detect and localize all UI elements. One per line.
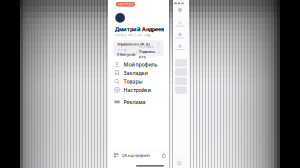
staticText: Подключить — [138, 49, 155, 59]
staticText: VK Combo — [138, 45, 153, 49]
staticText: 0 бонусов — [117, 51, 135, 57]
button[interactable]: Настройки — [108, 86, 169, 94]
staticText: Дмитрий Андреев — [115, 26, 164, 33]
staticText: QR-код профиля — [121, 153, 149, 158]
button[interactable]: Управление VK ID — [113, 40, 163, 48]
button[interactable]: Закладки — [108, 69, 169, 77]
button[interactable]: Товары — [108, 77, 169, 86]
staticText: Управление VK ID — [117, 41, 150, 47]
staticText: СМОТРЕТЬ — [117, 2, 133, 6]
staticText: был(а) в сети 5 мин назад — [115, 33, 151, 37]
button[interactable]: Реклама — [108, 98, 169, 106]
button[interactable]: VK Pay — [117, 48, 138, 57]
button[interactable]: QR-код профиля — [108, 150, 169, 160]
staticText: VK Pay — [117, 48, 126, 51]
staticText: Реклама — [123, 98, 145, 105]
staticText: Закладки — [123, 69, 147, 76]
button[interactable]: VK Combo — [138, 48, 160, 57]
staticText: Товары — [123, 78, 142, 85]
button[interactable]: СМОТРЕТЬ — [116, 2, 135, 7]
button[interactable]: Profile photo — [115, 13, 125, 23]
staticText: Мой профиль — [123, 61, 157, 68]
button[interactable]: Мой профиль — [108, 60, 169, 69]
staticText: Настройки — [123, 86, 150, 93]
